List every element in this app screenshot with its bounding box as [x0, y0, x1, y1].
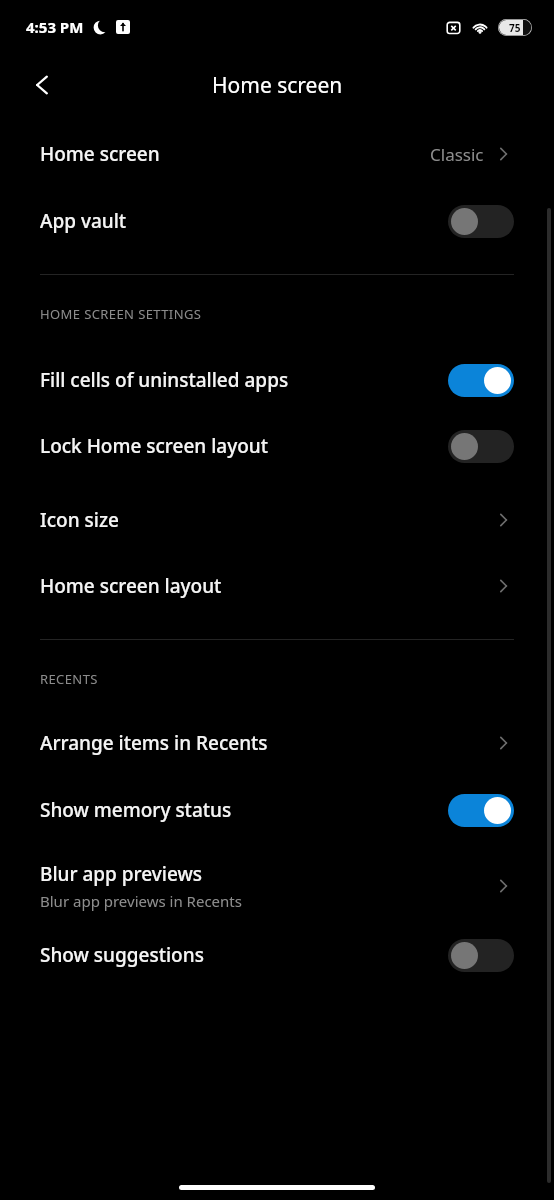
button[interactable]: Show memory status — [0, 772, 554, 848]
staticText: HOME SCREEN SETTINGS — [40, 305, 202, 323]
button[interactable]: Back — [18, 61, 66, 109]
staticText: Home screen — [212, 71, 343, 100]
staticText: Home screen layout — [40, 573, 222, 599]
staticText: Show suggestions — [40, 942, 448, 968]
staticText: RECENTS — [40, 670, 98, 688]
staticText: Show memory status — [40, 797, 448, 823]
staticText: Classic — [430, 143, 484, 166]
button[interactable]: Home screen layout — [0, 557, 554, 615]
staticText: 4:53 PM — [26, 17, 84, 37]
button[interactable]: On — [448, 364, 514, 397]
staticText: Icon size — [40, 507, 119, 533]
staticText: Blur app previews — [40, 861, 203, 887]
staticText: Blur app previews in Recents — [40, 891, 242, 911]
button[interactable]: Blur app previews — [0, 848, 554, 924]
button[interactable]: Off — [448, 430, 514, 463]
staticText: 75 — [509, 21, 521, 35]
button[interactable]: Home screen — [0, 126, 554, 182]
staticText: Home screen — [40, 141, 160, 167]
staticText: App vault — [40, 208, 448, 234]
button[interactable]: Show suggestions — [0, 924, 554, 986]
staticText: Lock Home screen layout — [40, 433, 448, 459]
button[interactable]: Fill cells of uninstalled apps — [0, 351, 554, 409]
button[interactable]: App vault — [0, 182, 554, 260]
staticText: Fill cells of uninstalled apps — [40, 367, 448, 393]
button[interactable]: Lock Home screen layout — [0, 409, 554, 483]
button[interactable]: Off — [448, 939, 514, 972]
staticText: Arrange items in Recents — [40, 730, 268, 756]
button[interactable]: On — [448, 794, 514, 827]
button[interactable]: Icon size — [0, 483, 554, 557]
button[interactable]: Arrange items in Recents — [0, 714, 554, 772]
button[interactable]: Off — [448, 205, 514, 238]
